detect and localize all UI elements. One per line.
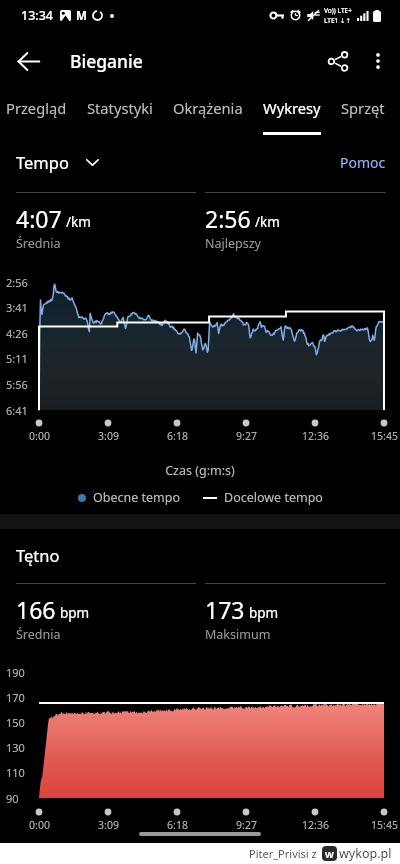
staticText: 6:41 — [6, 403, 28, 418]
button[interactable]: Wykresy — [253, 90, 331, 135]
button[interactable]: Sprzęt — [331, 90, 395, 135]
staticText: Bieganie — [70, 49, 143, 73]
staticText: 110 — [6, 765, 25, 780]
staticText: Średnia — [16, 235, 61, 252]
staticText: 190 — [6, 665, 25, 680]
button[interactable]: Share — [316, 39, 360, 83]
staticText: 173 — [205, 594, 245, 625]
staticText: Tętno — [16, 544, 60, 566]
staticText: 90 — [6, 791, 19, 806]
staticText: 3:09 — [98, 429, 119, 443]
staticText: Docelowe tempo — [224, 489, 323, 506]
staticText: wykop.pl — [339, 845, 392, 862]
staticText: 15:45 — [371, 429, 398, 443]
staticText: 12:36 — [302, 429, 329, 443]
staticText: bpm — [60, 604, 90, 622]
staticText: 12:36 — [302, 818, 329, 832]
staticText: bpm — [249, 604, 279, 622]
staticText: 6:18 — [167, 818, 188, 832]
button[interactable]: Back — [6, 39, 50, 83]
staticText: /km — [255, 213, 280, 231]
staticText: Obecne tempo — [93, 489, 181, 506]
staticText: 2:56 — [205, 203, 251, 234]
staticText: Najlepszy — [205, 235, 261, 252]
staticText: 170 — [6, 690, 25, 705]
button[interactable]: Tempo — [16, 151, 99, 173]
button[interactable]: More options — [356, 39, 400, 83]
staticText: Czas (g:m:s) — [0, 462, 400, 479]
staticText: 150 — [6, 715, 25, 730]
staticText: 2:56 — [6, 275, 28, 290]
staticText: Wykresy — [263, 98, 321, 118]
staticText: Statystyki — [87, 98, 153, 118]
staticText: Tempo — [16, 151, 69, 173]
staticText: /km — [66, 213, 91, 231]
staticText: 0:00 — [29, 818, 50, 832]
staticText: Vo)) LTE+ — [324, 6, 352, 15]
staticText: 166 — [16, 594, 56, 625]
staticText: Średnia — [16, 626, 61, 643]
button[interactable]: Statystyki — [77, 90, 163, 135]
staticText: Piter_Privisi z — [249, 846, 317, 861]
staticText: 5:56 — [6, 377, 28, 392]
staticText: Maksimum — [205, 626, 271, 643]
staticText: Okrążenia — [173, 98, 243, 118]
staticText: M — [76, 8, 87, 24]
staticText: 130 — [6, 740, 25, 755]
staticText: LTE1 ↓↑ — [324, 16, 351, 25]
button[interactable]: Przegląd — [0, 90, 77, 135]
staticText: 5:11 — [6, 351, 28, 366]
staticText: 13:34 — [21, 7, 54, 24]
staticText: 4:26 — [6, 326, 28, 341]
staticText: W — [325, 848, 334, 860]
staticText: Sprzęt — [341, 98, 385, 118]
staticText: 9:27 — [236, 429, 257, 443]
staticText: 6:18 — [167, 429, 188, 443]
button[interactable]: Okrążenia — [163, 90, 253, 135]
staticText: 15:45 — [371, 818, 398, 832]
staticText: Pomoc — [340, 153, 386, 172]
staticText: 4:07 — [16, 203, 62, 234]
staticText: 9:27 — [236, 818, 257, 832]
staticText: 3:41 — [6, 300, 28, 315]
staticText: Przegląd — [6, 98, 67, 118]
staticText: 0:00 — [29, 429, 50, 443]
button[interactable]: Pomoc — [340, 153, 386, 172]
staticText: 3:09 — [98, 818, 119, 832]
